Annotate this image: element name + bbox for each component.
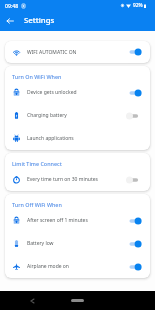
- button[interactable]: Every time turn on 30 minutes: [5, 168, 150, 191]
- staticText: Launch applications: [27, 135, 129, 142]
- button[interactable]: Charging battery: [5, 104, 150, 127]
- button[interactable]: Toggle: [129, 214, 148, 228]
- button[interactable]: Toggle: [129, 260, 148, 274]
- staticText: After screen off 1 minutes: [27, 217, 129, 224]
- staticText: Airplane mode on: [27, 263, 129, 270]
- button[interactable]: Toggle: [129, 109, 148, 123]
- staticText: WIFI AUTOMATIC ON: [27, 49, 129, 56]
- button[interactable]: Back: [27, 296, 37, 306]
- staticText: 09:48: [5, 2, 19, 9]
- button[interactable]: Toggle: [129, 86, 148, 100]
- button[interactable]: Toggle: [129, 45, 148, 59]
- button[interactable]: Launch applications: [5, 127, 150, 150]
- staticText: Device gets unlocked: [27, 89, 129, 96]
- staticText: Battery low: [27, 240, 129, 247]
- staticText: Charging battery: [27, 112, 129, 119]
- button[interactable]: WIFI AUTOMATIC ON: [5, 41, 150, 63]
- button[interactable]: Airplane mode on: [5, 255, 150, 278]
- staticText: 92%: [133, 2, 143, 9]
- button[interactable]: Toggle: [129, 237, 148, 251]
- button[interactable]: Home: [71, 299, 84, 302]
- button[interactable]: After screen off 1 minutes: [5, 209, 150, 232]
- staticText: Turn Off WiFi When: [12, 201, 62, 208]
- button[interactable]: Battery low: [5, 232, 150, 255]
- staticText: Settings: [24, 15, 55, 26]
- button[interactable]: Device gets unlocked: [5, 81, 150, 104]
- button[interactable]: Toggle: [129, 173, 148, 187]
- staticText: Every time turn on 30 minutes: [27, 176, 129, 183]
- staticText: Limit Time Connect: [12, 160, 62, 167]
- button[interactable]: Back: [0, 10, 20, 31]
- staticText: Turn On WiFi When: [12, 73, 62, 80]
